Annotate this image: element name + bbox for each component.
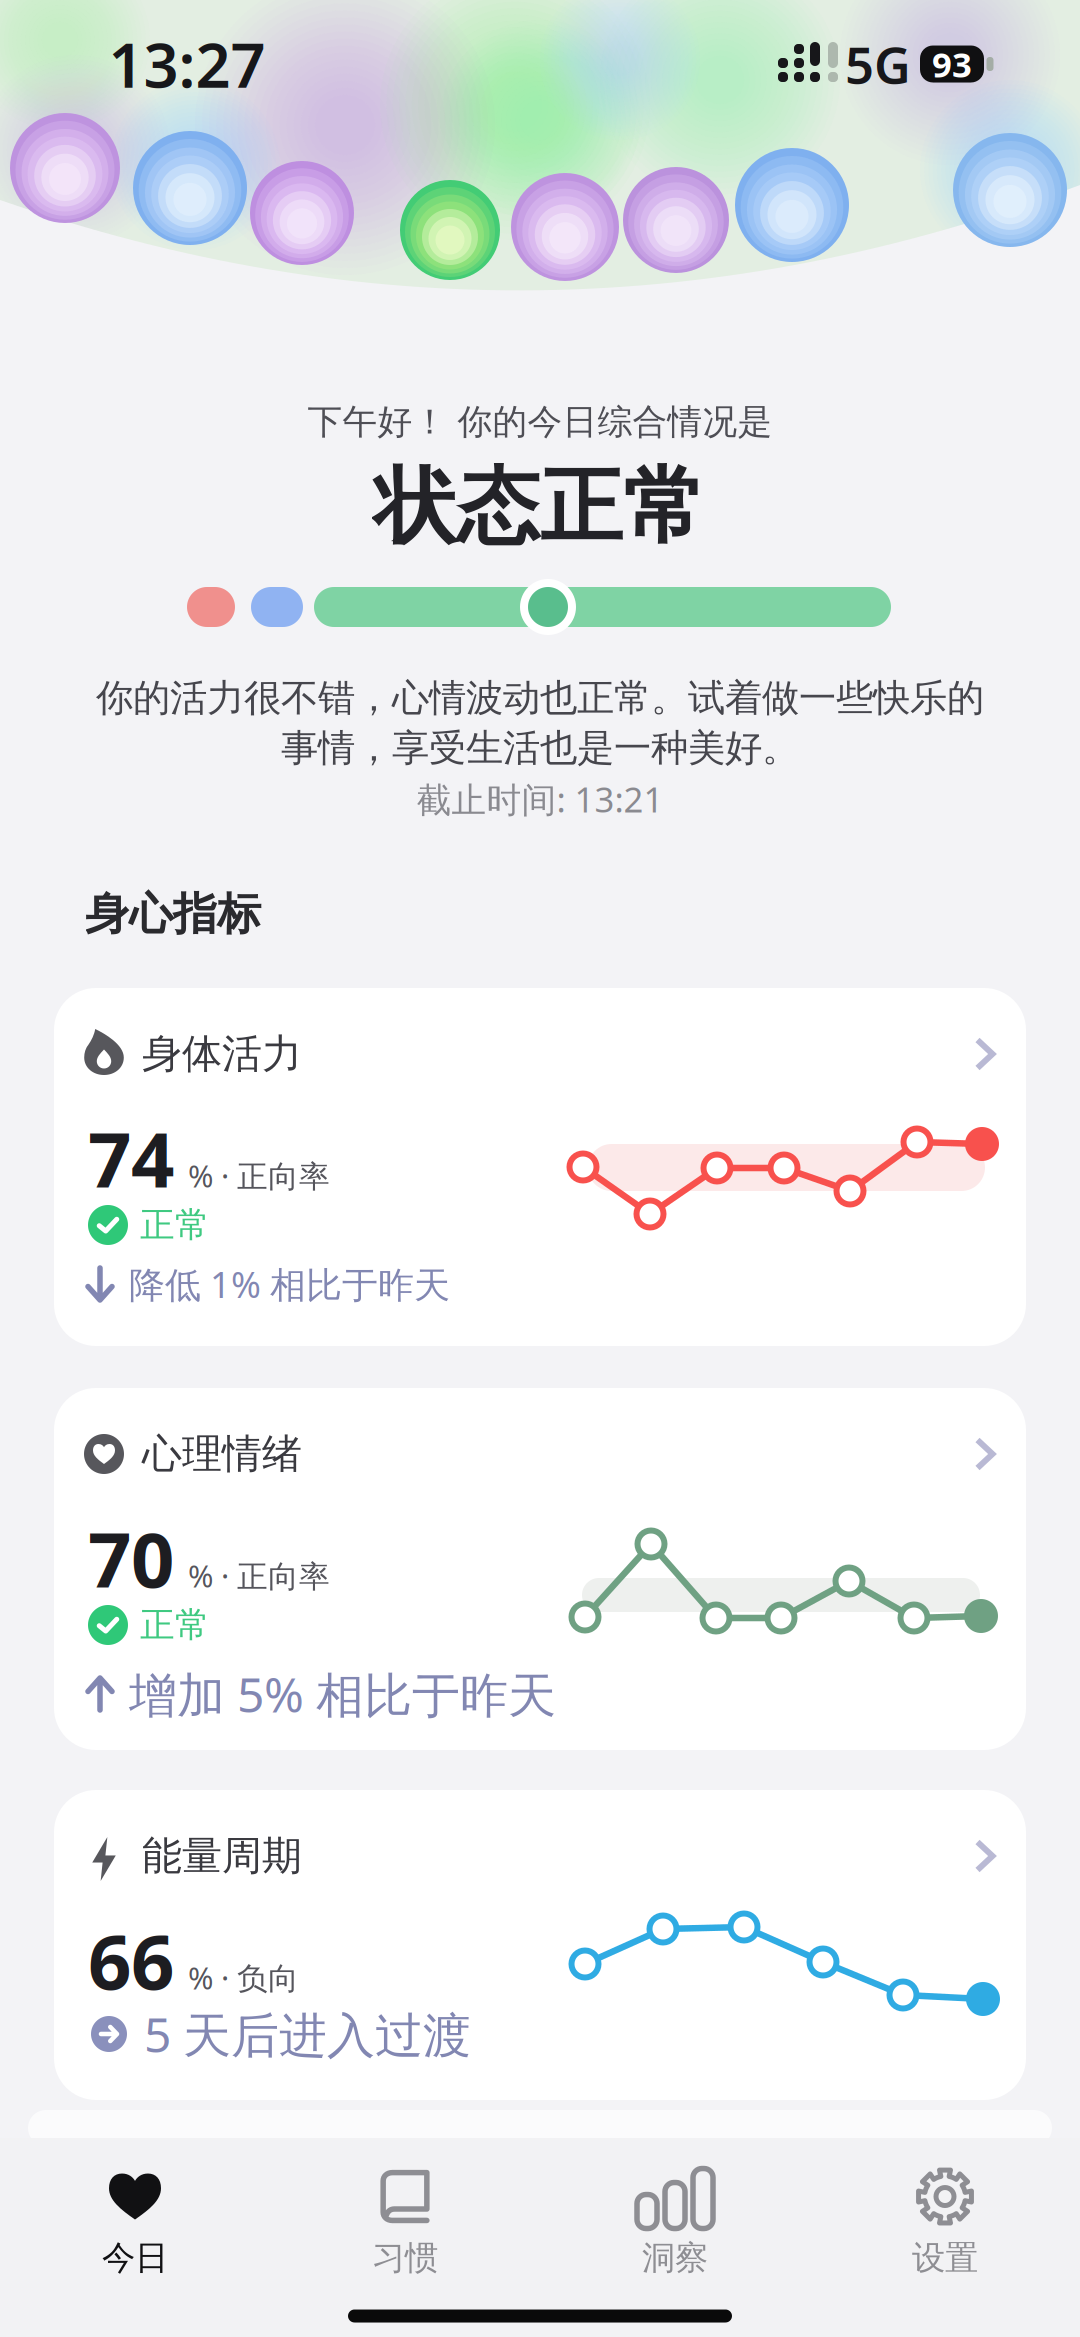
staticText: 身体活力	[142, 1029, 302, 1078]
button[interactable]: 能量周期	[54, 1790, 1026, 2100]
button[interactable]: 心理情绪	[54, 1388, 1026, 1750]
staticText: 下午好！ 你的今日综合情况是	[307, 401, 772, 443]
staticText: 能量周期	[142, 1831, 302, 1880]
button[interactable]: 设置	[810, 2157, 1080, 2287]
staticText: % · 正向率	[188, 1555, 330, 1596]
staticText: 事情，享受生活也是一种美好。	[281, 725, 799, 771]
staticText: 今日	[102, 2237, 168, 2278]
staticText: 身心指标	[85, 887, 261, 941]
button[interactable]: 身体活力	[54, 988, 1026, 1346]
staticText: 降低 1% 相比于昨天	[129, 1260, 450, 1308]
staticText: 正常	[140, 1604, 210, 1646]
staticText: 截止时间: 13:21	[416, 776, 663, 822]
staticText: % · 正向率	[188, 1155, 330, 1196]
staticText: % · 负向	[188, 1957, 299, 1998]
staticText: 正常	[140, 1204, 210, 1246]
staticText: 5 天后进入过渡	[144, 2002, 471, 2066]
staticText: 13:27	[108, 23, 265, 105]
staticText: 93	[932, 41, 972, 87]
staticText: 设置	[912, 2237, 978, 2278]
staticText: 状态正常	[374, 456, 706, 558]
staticText: 74	[88, 1107, 174, 1208]
staticText: 习惯	[372, 2237, 438, 2278]
button[interactable]: 洞察	[540, 2157, 810, 2287]
staticText: 你的活力很不错，心情波动也正常。试着做一些快乐的	[96, 675, 984, 721]
button[interactable]: 习惯	[270, 2157, 540, 2287]
staticText: 心理情绪	[142, 1429, 302, 1478]
staticText: 70	[88, 1507, 174, 1608]
staticText: 洞察	[642, 2237, 708, 2278]
staticText: 66	[88, 1909, 174, 2010]
staticText: 5G	[845, 30, 911, 98]
button[interactable]: 今日	[0, 2157, 270, 2287]
staticText: 增加 5% 相比于昨天	[129, 1662, 556, 1726]
